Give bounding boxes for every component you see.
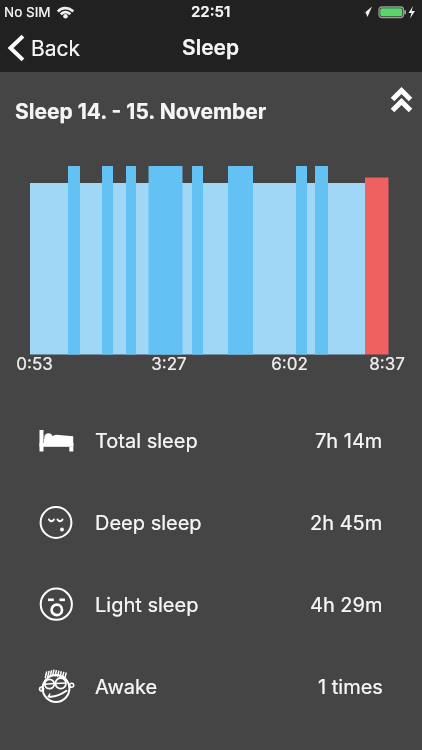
button[interactable]: Back bbox=[2, 30, 92, 68]
staticText: 4h 29m bbox=[310, 593, 383, 617]
staticText: 2h 45m bbox=[310, 511, 383, 535]
staticText: Deep sleep bbox=[95, 511, 202, 535]
button[interactable]: Light sleep bbox=[0, 575, 422, 635]
staticText: Back bbox=[31, 36, 81, 61]
staticText: 22:51 bbox=[191, 2, 231, 20]
button[interactable]: Deep sleep bbox=[0, 493, 422, 553]
staticText: Sleep bbox=[182, 35, 240, 60]
staticText: 6:02 bbox=[271, 354, 308, 375]
staticText: 7h 14m bbox=[315, 429, 383, 453]
staticText: 0:53 bbox=[16, 354, 53, 375]
staticText: No SIM bbox=[4, 4, 51, 20]
staticText: 8:37 bbox=[369, 354, 405, 375]
staticText: Awake bbox=[95, 675, 158, 699]
button[interactable] bbox=[386, 82, 418, 118]
staticText: Sleep 14. - 15. November bbox=[15, 99, 267, 124]
staticText: Light sleep bbox=[95, 593, 199, 617]
staticText: Total sleep bbox=[95, 429, 198, 453]
staticText: 1 times bbox=[318, 675, 383, 699]
button[interactable]: Awake bbox=[0, 657, 422, 717]
button[interactable]: Total sleep bbox=[0, 411, 422, 471]
staticText: 3:27 bbox=[151, 354, 187, 375]
